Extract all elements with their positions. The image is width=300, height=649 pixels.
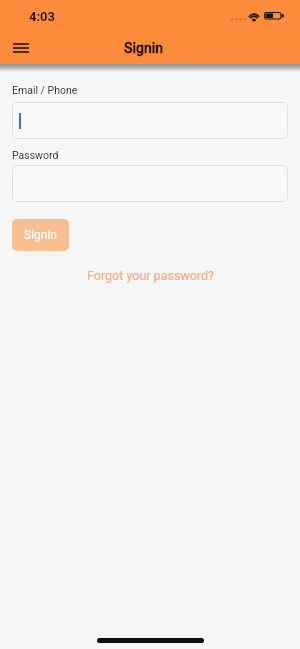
button[interactable] [12, 165, 288, 202]
button[interactable]: Forgot your password? [87, 268, 214, 283]
staticText: Password [12, 149, 59, 161]
staticText: Signin [24, 228, 57, 242]
button[interactable]: Signin [12, 219, 69, 251]
staticText: Signin [124, 40, 164, 56]
button[interactable] [12, 102, 288, 139]
staticText: 4:03 [29, 9, 56, 24]
button[interactable]: Open navigation menu [0, 32, 42, 64]
staticText: Email / Phone [12, 84, 78, 96]
